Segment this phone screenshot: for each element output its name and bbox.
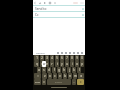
staticText: d: [48, 68, 50, 72]
staticText: 6: [61, 56, 63, 60]
staticText: English: [55, 81, 63, 84]
staticText: 8: [71, 56, 73, 60]
staticText: x: [49, 74, 51, 78]
button[interactable]: f: [52, 67, 56, 73]
button[interactable]: Cc: [33, 12, 85, 17]
staticText: j: [69, 68, 70, 72]
button[interactable]: a: [37, 67, 41, 73]
staticText: 4: [51, 56, 53, 60]
button[interactable]: More options: [53, 1, 57, 5]
staticText: h: [63, 68, 65, 72]
staticText: y: [61, 62, 63, 66]
button[interactable]: Back: [33, 1, 37, 5]
button[interactable]: z: [42, 73, 47, 79]
button[interactable]: Keyboard tool 6: [76, 51, 79, 54]
staticText: v: [59, 74, 61, 78]
button[interactable]: 4: [50, 55, 54, 61]
button[interactable]: Period: [72, 79, 76, 85]
button[interactable]: o: [75, 61, 79, 67]
staticText: f: [54, 68, 55, 72]
button[interactable]: w: [40, 61, 44, 67]
button[interactable]: Send to: [33, 6, 85, 11]
button[interactable]: q: [34, 61, 39, 67]
button[interactable]: i: [70, 61, 74, 67]
staticText: 0: [81, 56, 83, 60]
button[interactable]: b: [63, 73, 67, 79]
staticText: k: [73, 68, 75, 72]
button[interactable]: r: [50, 61, 54, 67]
button[interactable]: Emoji: [42, 79, 46, 85]
button[interactable]: 8: [70, 55, 74, 61]
button[interactable]: d: [47, 67, 51, 73]
button[interactable]: 0: [80, 55, 84, 61]
staticText: l: [79, 68, 80, 72]
staticText: 9: [76, 56, 78, 60]
button[interactable]: Keyboard tool 7: [80, 51, 83, 54]
staticText: 3: [46, 56, 48, 60]
staticText: 1: [36, 56, 38, 60]
button[interactable]: Keyboard tool 4: [68, 51, 71, 54]
button[interactable]: e: [45, 61, 49, 67]
staticText: c: [54, 74, 56, 78]
button[interactable]: Attach file: [38, 1, 42, 5]
staticText: w: [41, 62, 44, 66]
button[interactable]: v: [58, 73, 62, 79]
button[interactable]: h: [62, 67, 66, 73]
staticText: n: [69, 74, 71, 78]
staticText: Send to: [35, 7, 47, 11]
staticText: ?123: [35, 81, 40, 84]
button[interactable]: c: [53, 73, 57, 79]
button[interactable]: Enter: [77, 79, 84, 85]
button[interactable]: 5: [55, 55, 59, 61]
staticText: p: [81, 62, 83, 66]
staticText: s: [43, 68, 45, 72]
staticText: e: [46, 62, 48, 66]
button[interactable]: Shift: [34, 73, 41, 79]
button[interactable]: y: [60, 61, 64, 67]
button[interactable]: u: [65, 61, 69, 67]
staticText: 2: [41, 56, 43, 60]
staticText: Gboard: [36, 51, 45, 54]
button[interactable]: 9: [75, 55, 79, 61]
button[interactable]: 2: [40, 55, 44, 61]
button[interactable]: Keyboard tool 1: [56, 51, 59, 54]
button[interactable]: Space: [47, 79, 71, 85]
button[interactable]: Send: [43, 1, 47, 5]
staticText: t: [57, 62, 58, 66]
button[interactable]: Backspace: [78, 73, 84, 79]
button[interactable]: Keyboard tool 2: [60, 51, 63, 54]
staticText: 7: [66, 56, 68, 60]
button[interactable]: s: [42, 67, 46, 73]
staticText: b: [64, 74, 66, 78]
staticText: g: [58, 68, 60, 72]
button[interactable]: Keyboard tool 5: [72, 51, 75, 54]
button[interactable]: n: [68, 73, 72, 79]
staticText: 5: [56, 56, 58, 60]
button[interactable]: x: [48, 73, 52, 79]
staticText: w: [43, 62, 46, 66]
button[interactable]: Keyboard tool 3: [64, 51, 67, 54]
button[interactable]: 7: [65, 55, 69, 61]
button[interactable]: k: [72, 67, 76, 73]
button[interactable]: ?123: [34, 79, 41, 85]
staticText: q: [36, 62, 38, 66]
button[interactable]: Account: [73, 2, 78, 4]
staticText: o: [76, 62, 78, 66]
button[interactable]: l: [77, 67, 81, 73]
button[interactable]: g: [57, 67, 61, 73]
staticText: z: [44, 74, 46, 78]
button[interactable]: j: [67, 67, 71, 73]
button[interactable]: p: [80, 61, 84, 67]
button[interactable]: 6: [60, 55, 64, 61]
button[interactable]: 3: [45, 55, 49, 61]
staticText: Cc: [35, 13, 39, 17]
staticText: u: [66, 62, 68, 66]
button[interactable]: Save draft: [48, 1, 52, 5]
button[interactable]: 1: [34, 55, 39, 61]
staticText: i: [72, 62, 73, 66]
button[interactable]: m: [73, 73, 77, 79]
button[interactable]: t: [55, 61, 59, 67]
